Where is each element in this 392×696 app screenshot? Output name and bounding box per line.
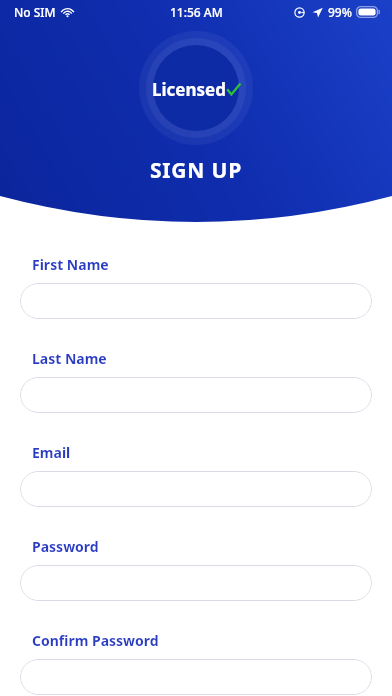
- staticText: First Name: [32, 255, 109, 274]
- staticText: Password: [32, 537, 99, 556]
- button[interactable]: Confirm Password: [20, 659, 372, 695]
- button[interactable]: Last Name: [20, 377, 372, 413]
- button[interactable]: Email: [20, 471, 372, 507]
- staticText: Confirm Password: [32, 631, 159, 650]
- staticText: Last Name: [32, 349, 107, 368]
- staticText: SIGN UP: [0, 156, 392, 185]
- staticText: 99%: [328, 4, 352, 20]
- staticText: Licensed: [152, 78, 226, 101]
- staticText: No SIM: [14, 4, 56, 20]
- button[interactable]: Password: [20, 565, 372, 601]
- button[interactable]: First Name: [20, 283, 372, 319]
- staticText: Email: [32, 443, 71, 462]
- staticText: 11:56 AM: [170, 4, 223, 20]
